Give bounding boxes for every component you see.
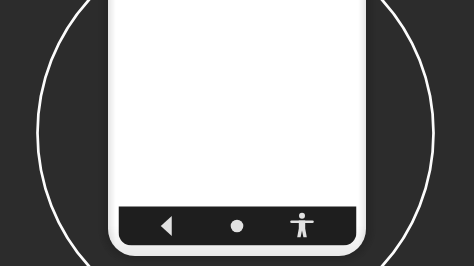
button[interactable]: Home (198, 207, 277, 246)
button[interactable]: Back (119, 207, 198, 246)
button[interactable]: Accessibility (277, 207, 357, 246)
